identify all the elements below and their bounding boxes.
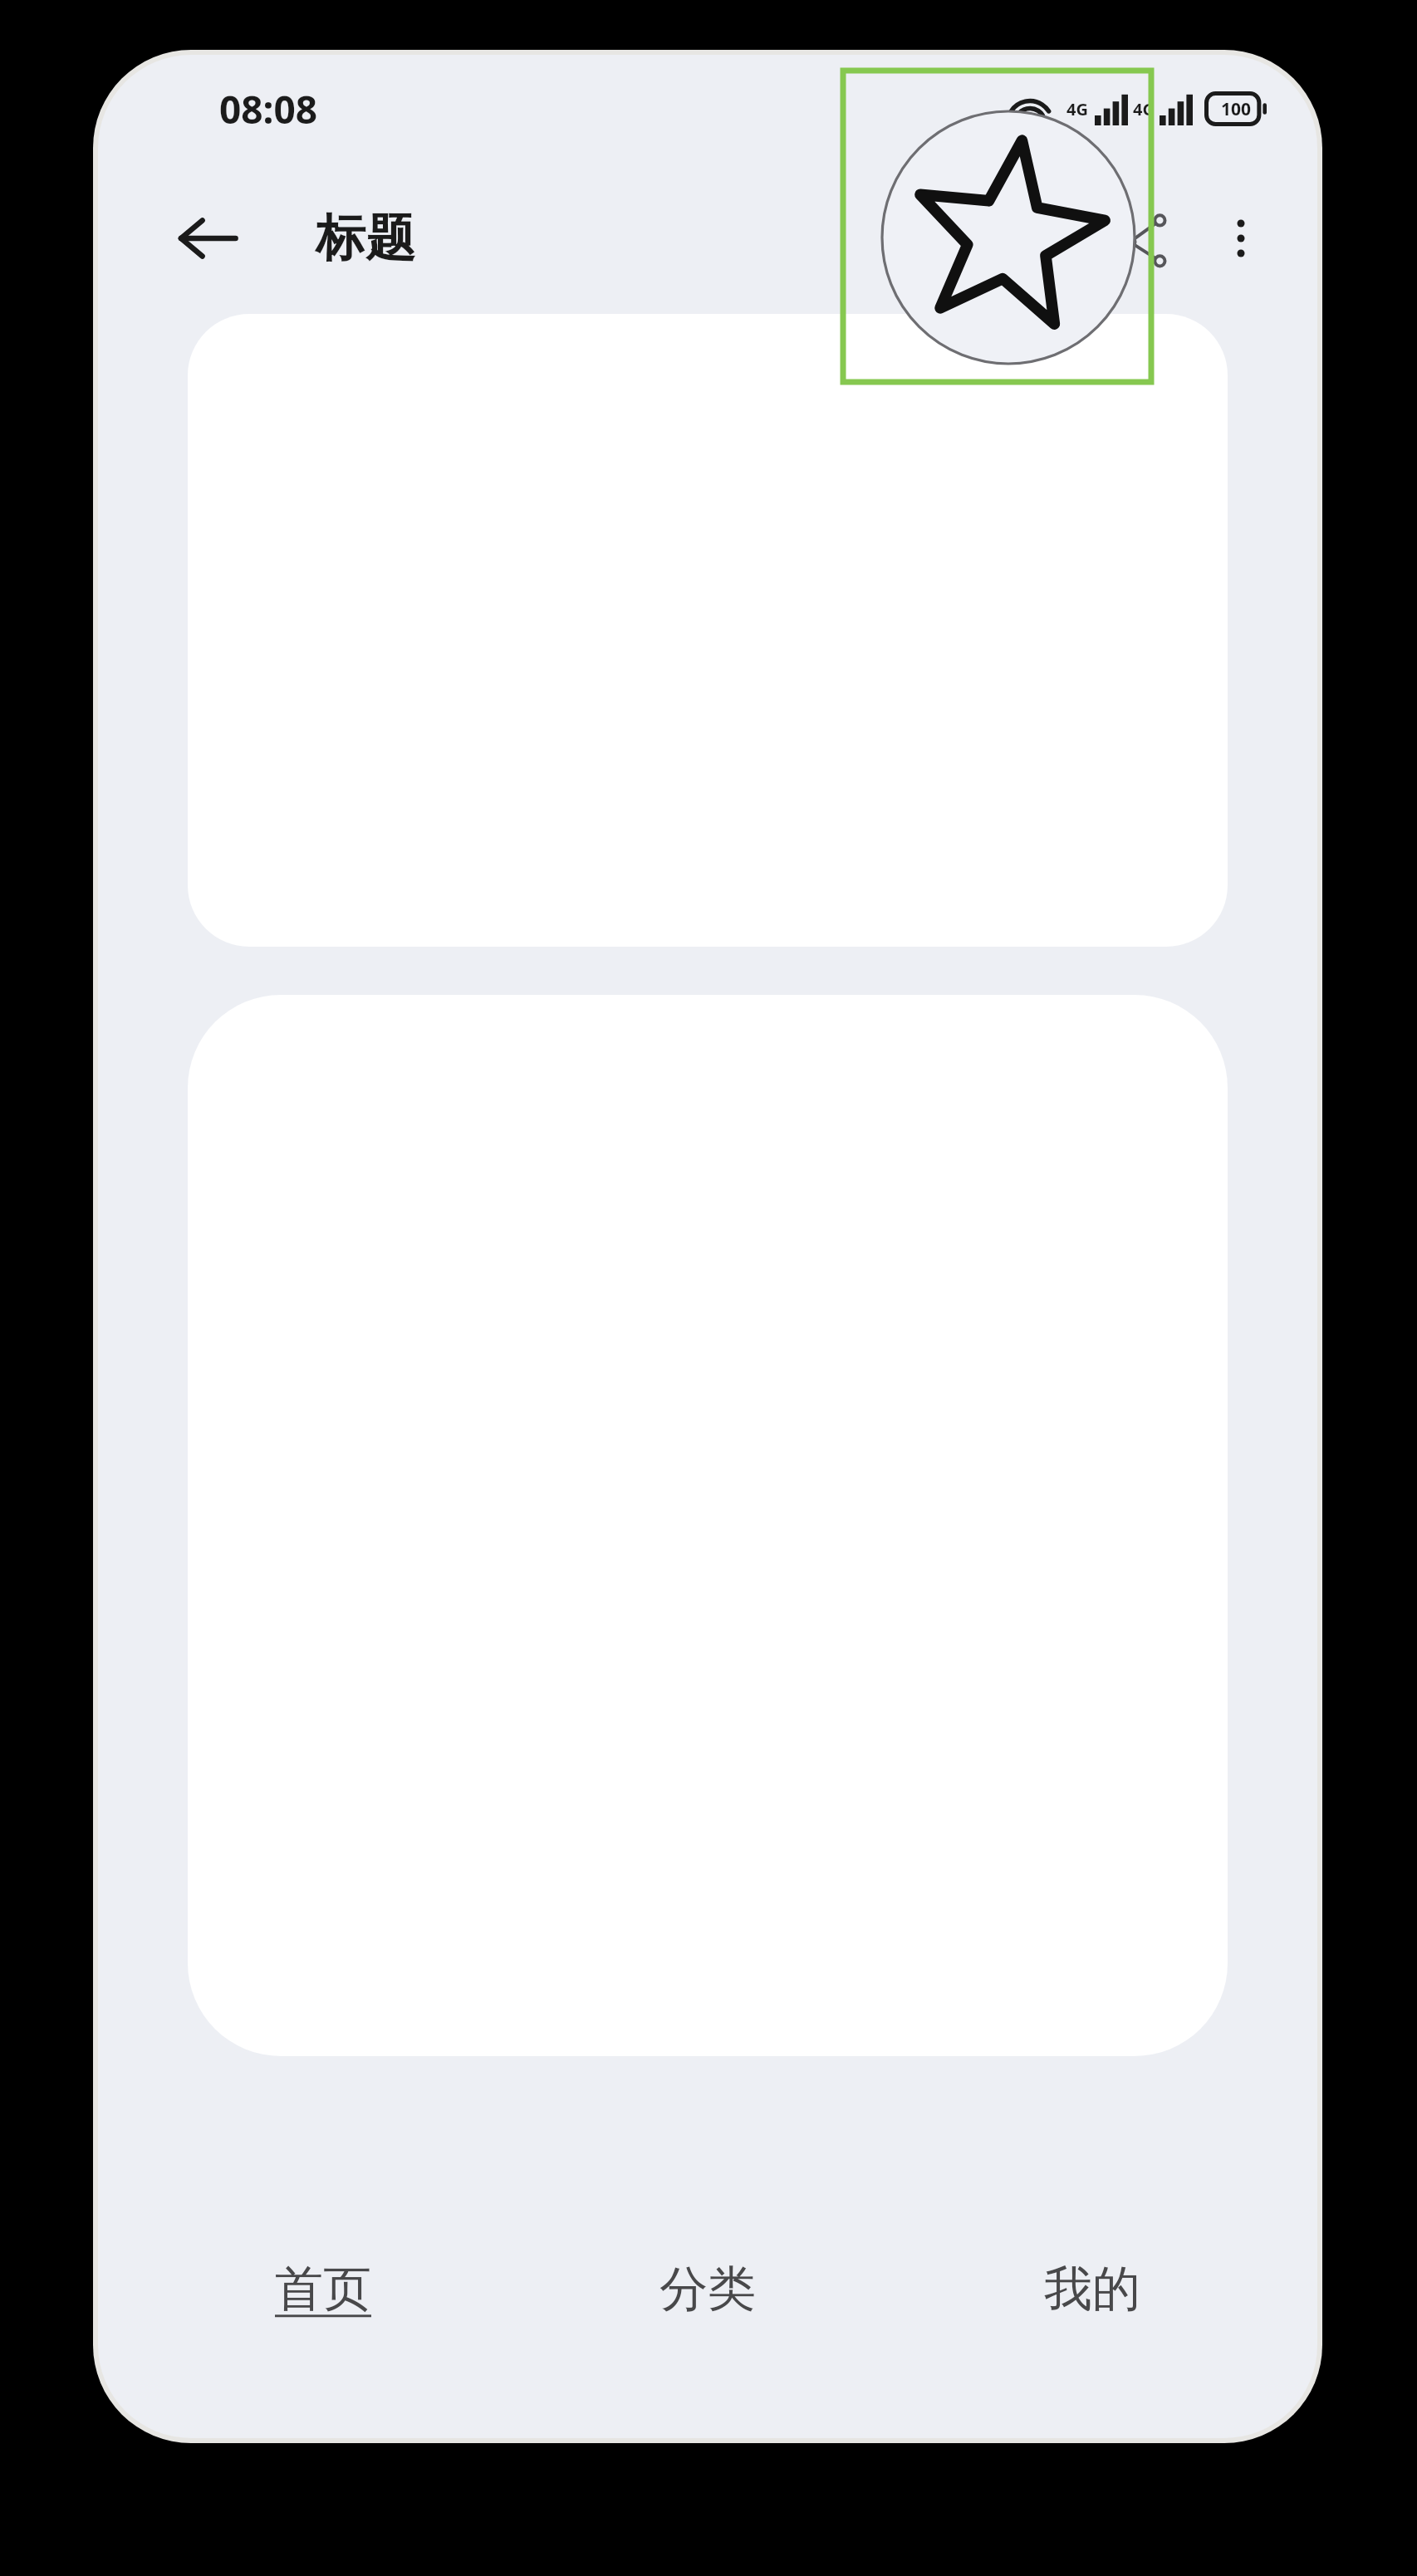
button[interactable]: 首页	[131, 2231, 515, 2438]
staticText: 4G	[1066, 98, 1088, 120]
staticText: 标题	[316, 207, 415, 270]
button[interactable]: 分类	[515, 2231, 900, 2438]
button[interactable]: 我的	[900, 2231, 1284, 2438]
staticText: 100	[1221, 97, 1252, 121]
staticText: 4G	[1133, 98, 1155, 120]
button[interactable]: Back	[161, 192, 254, 285]
staticText: 首页	[275, 2259, 371, 2319]
staticText: 我的	[1044, 2259, 1140, 2319]
button[interactable]: More options	[1194, 192, 1287, 285]
staticText: 分类	[659, 2259, 756, 2319]
staticText: 08:08	[219, 83, 318, 135]
button[interactable]: Share	[1101, 192, 1194, 285]
button[interactable]	[188, 314, 1228, 947]
